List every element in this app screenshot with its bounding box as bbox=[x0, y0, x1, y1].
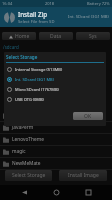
staticText: Int. SDcard (3G1 MB) bbox=[68, 14, 109, 20]
button[interactable]: Android bbox=[0, 110, 112, 121]
button[interactable]: JavaPerm bbox=[0, 122, 112, 133]
staticText: USB OTG (0MB) bbox=[15, 97, 44, 102]
button[interactable]: Home bbox=[48, 185, 64, 200]
staticText: Battery 72% bbox=[87, 1, 110, 6]
staticText: Home bbox=[15, 33, 30, 40]
staticText: Int. SDcard (3G1 MB) bbox=[15, 77, 54, 82]
button[interactable]: Home bbox=[2, 32, 36, 40]
staticText: Select File from SD bbox=[18, 19, 55, 25]
staticText: Select Storage bbox=[12, 172, 46, 179]
staticText: OK bbox=[84, 113, 92, 120]
staticText: JavaPerm bbox=[12, 124, 34, 131]
button[interactable]: USB OTG (0MB) bbox=[4, 94, 106, 104]
button[interactable]: Select Storage bbox=[5, 170, 52, 181]
button[interactable]: Internal Storage (513MB) bbox=[4, 64, 106, 74]
button[interactable]: Back bbox=[16, 185, 32, 200]
button[interactable]: LenovoTheme bbox=[0, 134, 112, 145]
staticText: Install Image bbox=[68, 172, 99, 179]
staticText: /sdcard bbox=[3, 44, 19, 50]
staticText: Data bbox=[50, 33, 62, 40]
button[interactable]: magic bbox=[0, 146, 112, 157]
button[interactable]: Micro SDcard (1767MB) bbox=[4, 84, 106, 94]
staticText: magic bbox=[12, 148, 26, 155]
button[interactable]: NewMeMate bbox=[0, 158, 112, 169]
button[interactable]: Install Image bbox=[59, 170, 107, 181]
staticText: Select Storage bbox=[6, 54, 38, 60]
button[interactable]: OK bbox=[73, 112, 103, 120]
button[interactable]: Sys bbox=[76, 32, 110, 40]
staticText: Install Zip bbox=[18, 10, 47, 18]
staticText: NewMeMate bbox=[12, 160, 41, 167]
staticText: 16:04 bbox=[2, 1, 13, 6]
staticText: 2018 bbox=[45, 1, 55, 6]
button[interactable]: Data bbox=[39, 32, 73, 40]
staticText: LenovoTheme bbox=[12, 136, 44, 143]
button[interactable]: Recents bbox=[80, 185, 96, 200]
staticText: Sys bbox=[89, 33, 97, 40]
staticText: Micro SDcard (1767MB) bbox=[15, 87, 59, 92]
staticText: Internal Storage (513MB) bbox=[15, 67, 63, 72]
button[interactable]: Int. SDcard (3G1 MB) bbox=[4, 74, 106, 84]
